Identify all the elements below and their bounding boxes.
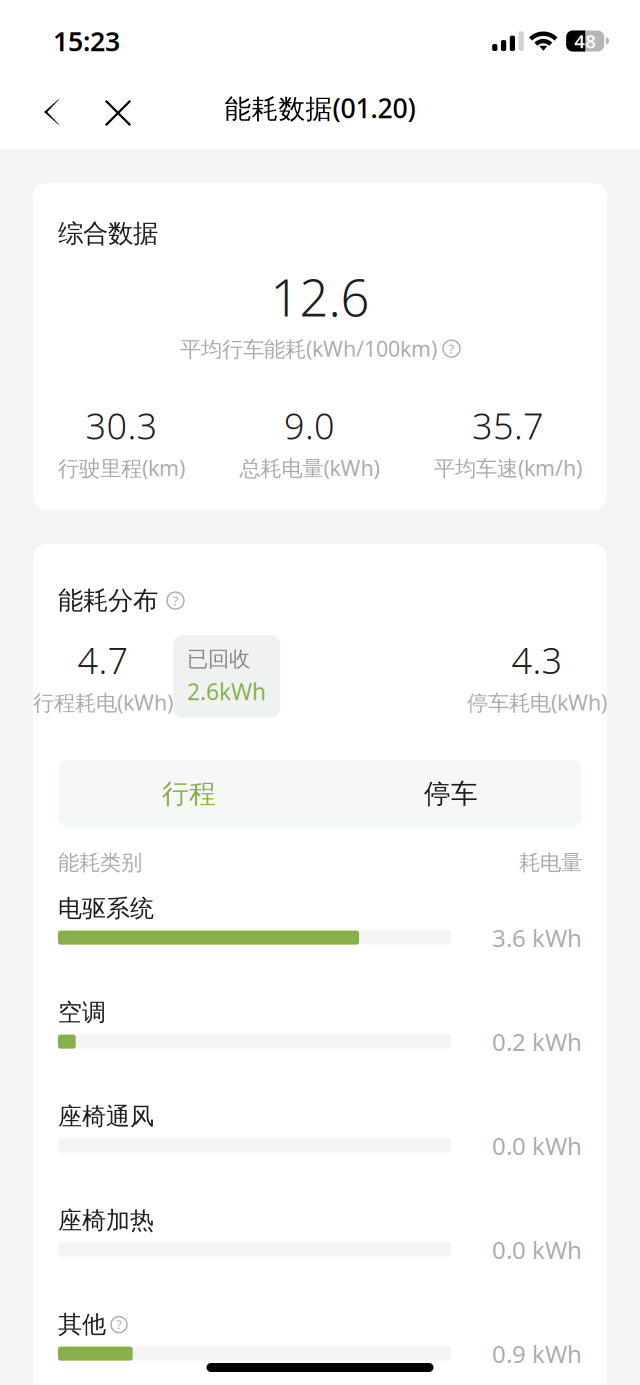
- staticText: 行程耗电(kWh): [33, 688, 173, 716]
- staticText: 行驶里程(km): [58, 453, 185, 482]
- staticText: ?: [116, 1317, 121, 1333]
- staticText: 座椅加热: [58, 1206, 154, 1235]
- staticText: 15:23: [53, 23, 120, 59]
- staticText: 空调: [58, 998, 106, 1027]
- staticText: 35.7: [472, 402, 544, 449]
- staticText: 停车: [424, 777, 478, 810]
- staticText: 其他: [58, 1310, 106, 1339]
- staticText: 停车耗电(kWh): [467, 688, 607, 716]
- staticText: 总耗电量(kWh): [239, 453, 379, 482]
- staticText: 座椅通风: [58, 1102, 154, 1131]
- staticText: 9.0: [284, 402, 335, 449]
- button[interactable]: Close: [90, 83, 146, 133]
- staticText: 平均车速(km/h): [434, 453, 582, 482]
- staticText: 能耗类别: [58, 849, 142, 876]
- staticText: ?: [172, 592, 178, 609]
- staticText: 已回收: [187, 646, 250, 672]
- staticText: 能耗数据(01.20): [224, 90, 415, 126]
- staticText: ?: [448, 340, 454, 357]
- staticText: 平均行车能耗(kWh/100km): [180, 334, 437, 363]
- staticText: 2.6kWh: [187, 676, 266, 706]
- staticText: 0.9 kWh: [492, 1338, 582, 1370]
- staticText: 48: [574, 29, 596, 53]
- staticText: 综合数据: [58, 218, 158, 249]
- staticText: 能耗分布: [58, 585, 158, 616]
- staticText: 0.0 kWh: [492, 1234, 582, 1266]
- button[interactable]: 停车: [320, 760, 582, 827]
- staticText: 耗电量: [519, 849, 582, 876]
- staticText: 行程: [162, 777, 216, 810]
- staticText: 0.0 kWh: [492, 1130, 582, 1162]
- staticText: 4.3: [511, 636, 562, 684]
- button[interactable]: Back: [28, 83, 90, 133]
- button[interactable]: 行程: [58, 760, 320, 827]
- staticText: 电驱系统: [58, 894, 154, 923]
- staticText: 0.2 kWh: [492, 1026, 582, 1058]
- staticText: 3.6 kWh: [492, 922, 582, 954]
- staticText: 4.7: [77, 636, 128, 684]
- staticText: 30.3: [85, 402, 157, 449]
- staticText: 12.6: [270, 263, 369, 330]
